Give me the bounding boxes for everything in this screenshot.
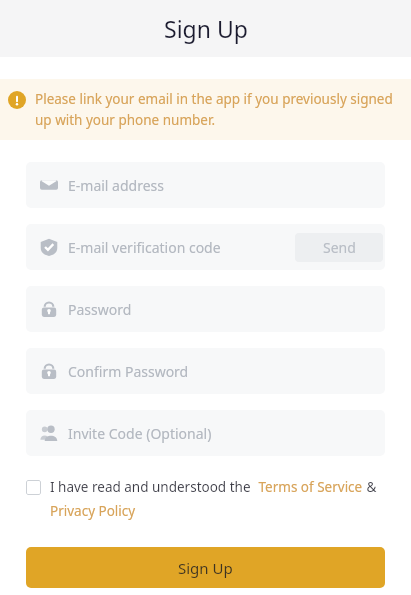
button[interactable]: Password — [26, 286, 385, 332]
button[interactable]: Sign Up — [26, 547, 385, 588]
staticText: Please link your email in the app if you… — [35, 90, 393, 129]
staticText: Sign Up — [164, 13, 248, 44]
staticText: Confirm Password — [68, 362, 189, 381]
other: Accept terms checkbox — [26, 480, 41, 495]
button[interactable]: E-mail verification code — [26, 224, 385, 270]
staticText: Password — [68, 300, 132, 319]
button[interactable]: Confirm Password — [26, 348, 385, 394]
staticText: Invite Code (Optional) — [68, 424, 212, 443]
staticText: E-mail address — [68, 176, 164, 195]
button[interactable]: Terms of Service — [255, 478, 363, 496]
button[interactable]: Send — [295, 233, 383, 262]
button[interactable]: Accept terms checkbox — [26, 478, 385, 520]
staticText: I have read and understood the — [50, 478, 255, 496]
staticText: Send — [323, 238, 356, 257]
staticText: & — [363, 478, 377, 496]
staticText: E-mail verification code — [68, 238, 221, 257]
button[interactable]: Privacy Policy — [50, 502, 136, 520]
button[interactable]: Invite Code (Optional) — [26, 410, 385, 456]
staticText: Sign Up — [178, 558, 233, 578]
button[interactable]: E-mail address — [26, 162, 385, 208]
